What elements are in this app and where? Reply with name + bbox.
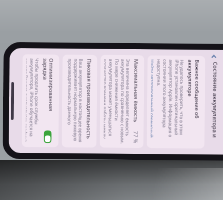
staticText: Максимальная ёмкость xyxy=(133,59,140,131)
button[interactable]: Найти авторизованный сервисный центр обс… xyxy=(151,59,155,144)
button[interactable]: Оптимизированная зарядка xyxy=(22,54,59,147)
staticText: Состояние аккумулятора и зарядка xyxy=(208,62,219,155)
staticText: Эта величина определяет ёмкость аккумуля… xyxy=(104,59,131,144)
staticText: Чтобы продлить срок службы аккумулятора,… xyxy=(26,58,40,143)
button[interactable]: Максимальная ёмкость xyxy=(100,55,144,148)
button[interactable]: Важное сообщение об аккумуляторе xyxy=(147,55,205,149)
staticText: Не удалось проверить, что в этом iPhone … xyxy=(155,59,185,145)
staticText: Найти авторизованный сервисный центр обс… xyxy=(151,59,155,144)
button[interactable]: Пиковая производительность xyxy=(62,54,97,148)
staticText: 77 % xyxy=(133,131,140,144)
button[interactable]: Back xyxy=(209,52,218,61)
button[interactable]: Optimised charging toggle xyxy=(44,130,52,143)
staticText: Пиковая производительность xyxy=(86,59,93,140)
staticText: Ваш аккумулятор в настоящее время поддер… xyxy=(66,58,84,144)
staticText: Важное сообщение об аккумуляторе xyxy=(187,59,201,145)
staticText: Оптимизированная зарядка xyxy=(42,58,55,130)
